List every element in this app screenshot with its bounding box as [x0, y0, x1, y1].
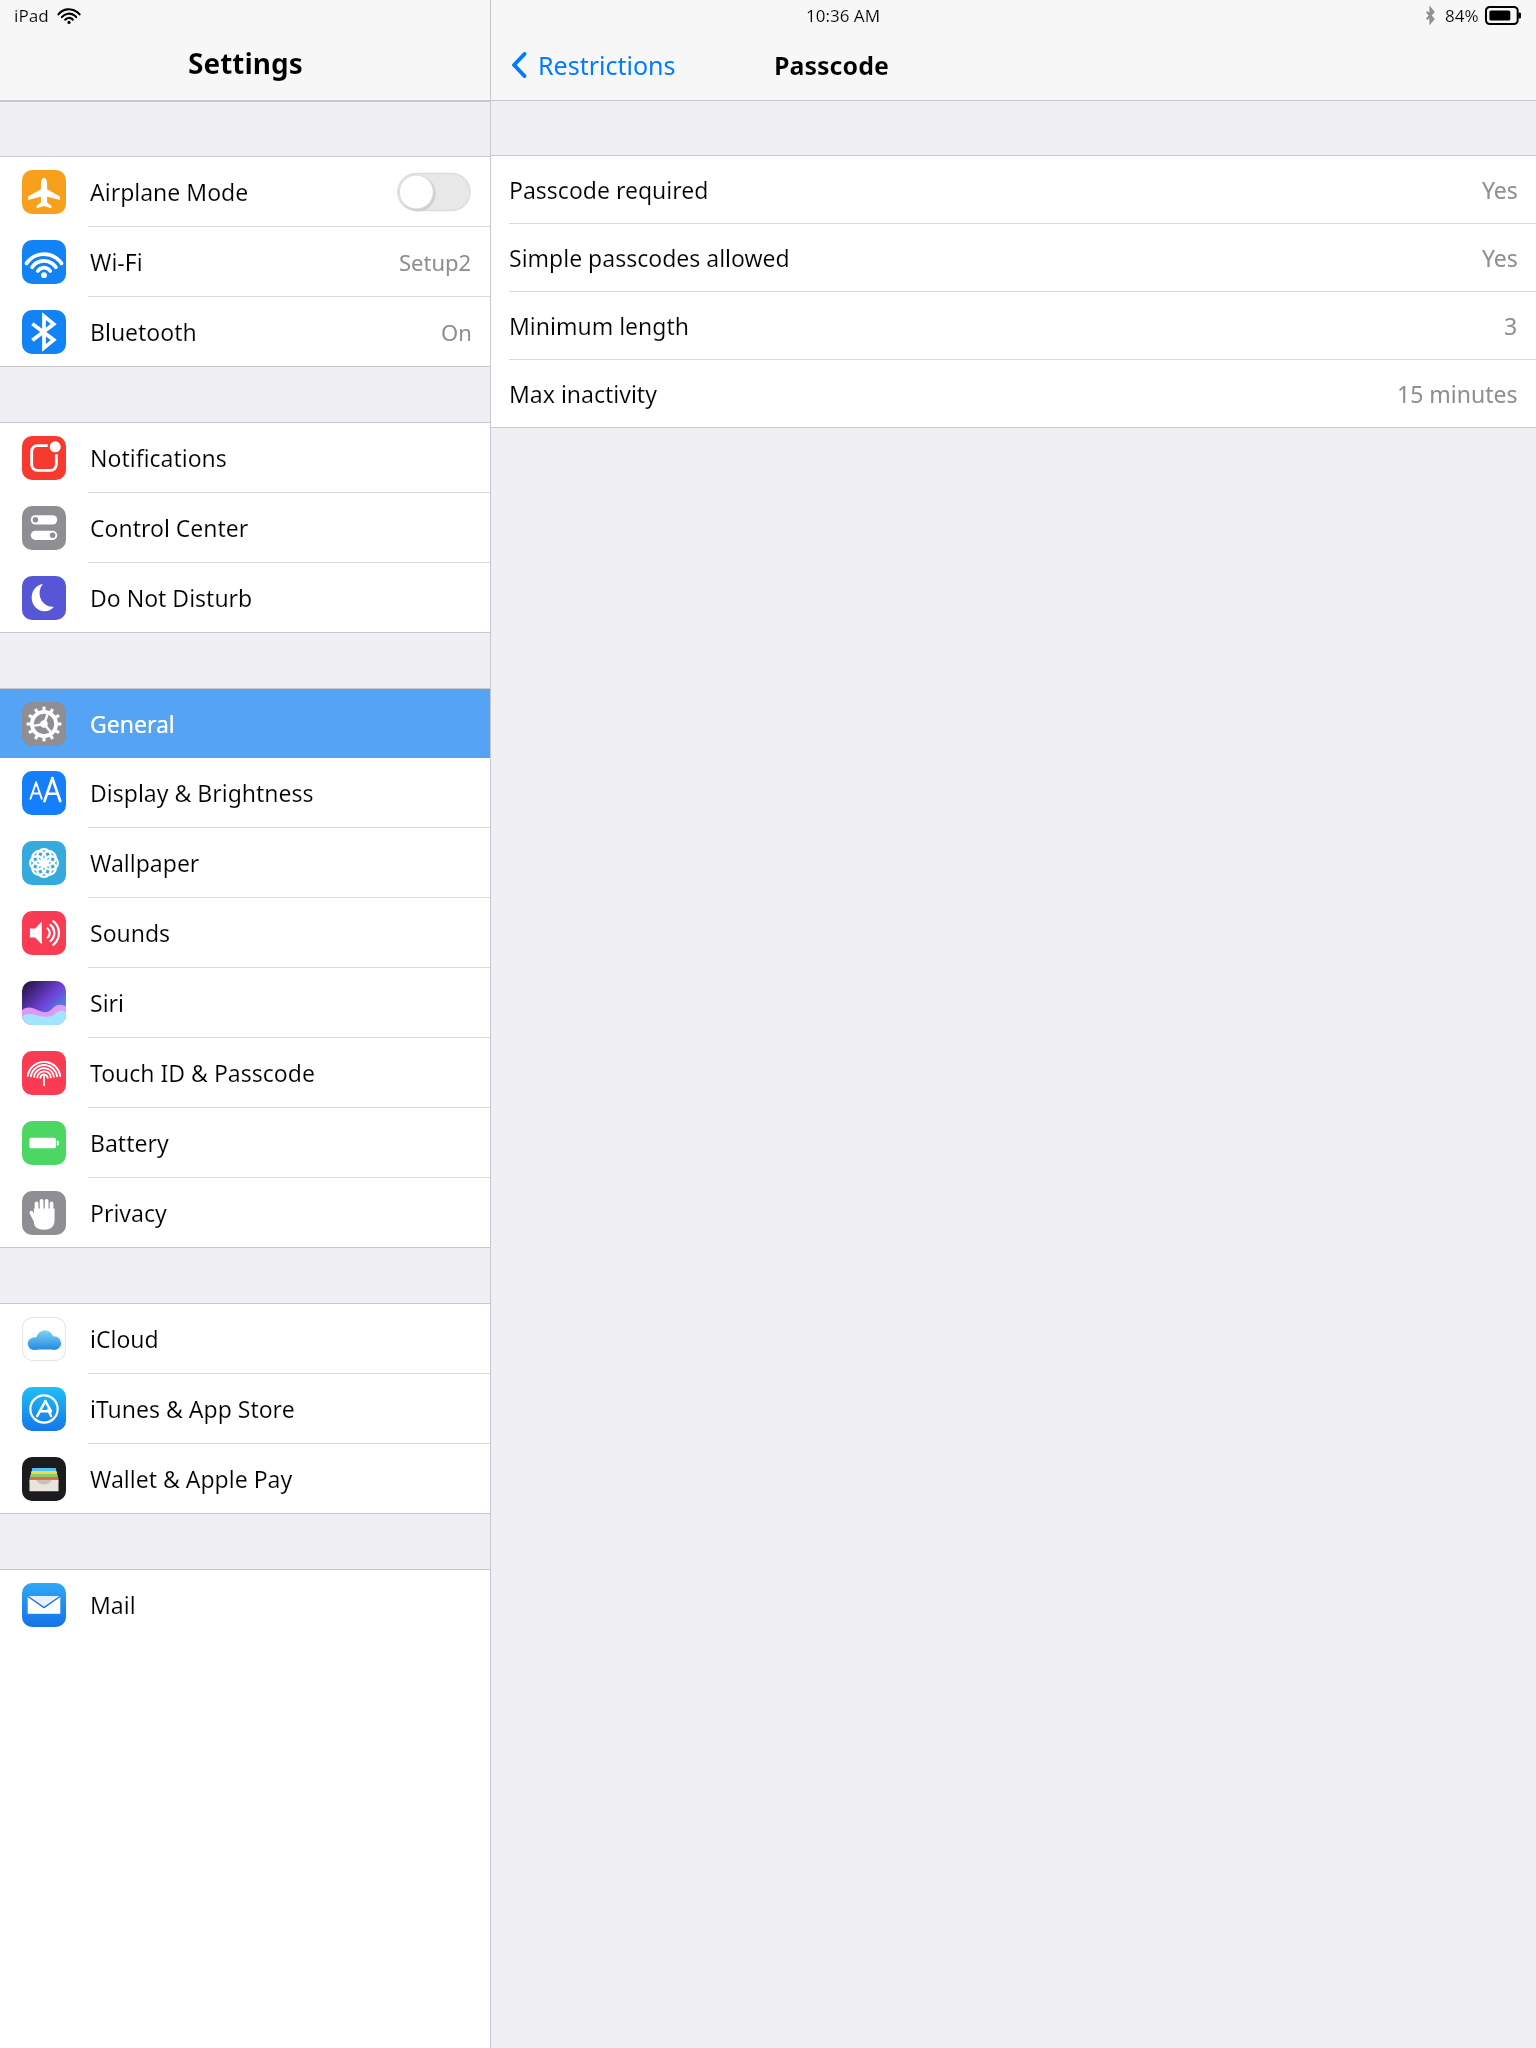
button[interactable]: Privacy	[0, 1178, 490, 1247]
button[interactable]: Passcode required	[491, 156, 1536, 223]
button[interactable]: Touch ID & Passcode	[0, 1038, 490, 1107]
staticText: iPad	[14, 4, 49, 27]
staticText: Notifications	[90, 442, 227, 473]
staticText: Setup2	[399, 247, 472, 277]
staticText: 10:36 AM	[806, 4, 881, 27]
staticText: Mail	[90, 1589, 136, 1620]
staticText: Simple passcodes allowed	[509, 242, 790, 273]
button[interactable]: Battery	[0, 1108, 490, 1177]
staticText: Yes	[1482, 174, 1518, 205]
staticText: General	[90, 708, 175, 739]
staticText: Do Not Disturb	[90, 582, 253, 613]
staticText: 84%	[1445, 4, 1479, 27]
button[interactable]: General	[0, 689, 490, 758]
button[interactable]: Minimum length	[491, 292, 1536, 359]
button[interactable]: Restrictions	[505, 42, 682, 88]
button[interactable]: Airplane Mode toggle	[396, 169, 472, 215]
staticText: Settings	[188, 44, 303, 82]
staticText: Airplane Mode	[90, 176, 249, 207]
staticText: Yes	[1482, 242, 1518, 273]
staticText: Passcode	[774, 48, 889, 82]
staticText: Touch ID & Passcode	[90, 1057, 315, 1088]
button[interactable]: iCloud	[0, 1304, 490, 1373]
staticText: Battery	[90, 1127, 169, 1158]
staticText: Control Center	[90, 512, 249, 543]
button[interactable]: Notifications	[0, 423, 490, 492]
button[interactable]: Do Not Disturb	[0, 563, 490, 632]
button[interactable]: Wallpaper	[0, 828, 490, 897]
staticText: Passcode required	[509, 174, 709, 205]
staticText: Siri	[90, 987, 124, 1018]
staticText: On	[441, 317, 472, 347]
staticText: 15 minutes	[1397, 378, 1518, 409]
button[interactable]: Bluetooth	[0, 297, 490, 366]
button[interactable]: Sounds	[0, 898, 490, 967]
staticText: Restrictions	[538, 48, 676, 82]
staticText: iTunes & App Store	[90, 1393, 295, 1424]
staticText: Sounds	[90, 917, 171, 948]
button[interactable]: Display & Brightness	[0, 758, 490, 827]
staticText: Minimum length	[509, 310, 689, 341]
button[interactable]: iTunes & App Store	[0, 1374, 490, 1443]
staticText: Privacy	[90, 1197, 167, 1228]
staticText: Wallet & Apple Pay	[90, 1463, 293, 1494]
button[interactable]: Wi-Fi	[0, 227, 490, 296]
button[interactable]: Control Center	[0, 493, 490, 562]
button[interactable]: Airplane Mode	[0, 157, 490, 226]
staticText: Wi-Fi	[90, 246, 143, 277]
staticText: 3	[1504, 310, 1518, 341]
button[interactable]: Simple passcodes allowed	[491, 224, 1536, 291]
staticText: iCloud	[90, 1323, 159, 1354]
button[interactable]: Mail	[0, 1570, 490, 1639]
staticText: Display & Brightness	[90, 777, 314, 808]
staticText: Bluetooth	[90, 316, 197, 347]
button[interactable]: Wallet & Apple Pay	[0, 1444, 490, 1513]
button[interactable]: Max inactivity	[491, 360, 1536, 427]
staticText: Wallpaper	[90, 847, 200, 878]
staticText: Max inactivity	[509, 378, 657, 409]
button[interactable]: Siri	[0, 968, 490, 1037]
